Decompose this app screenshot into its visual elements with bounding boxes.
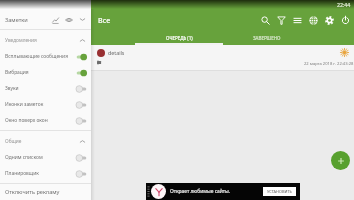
staticText: 22:44 [337, 1, 351, 8]
button[interactable]: Заметки [0, 10, 91, 29]
button[interactable]: Общие [0, 134, 91, 149]
button[interactable]: Отключить рекламу [0, 184, 91, 200]
button[interactable]: ОЧЕРЕДЬ (1) [135, 30, 223, 45]
button[interactable]: Search [257, 12, 273, 28]
button[interactable]: Preview [63, 14, 75, 26]
staticText: Общие [5, 138, 22, 145]
button[interactable]: Collapse [77, 14, 88, 25]
staticText: Открает любимые сайты. [170, 188, 231, 195]
button[interactable]: Statistics [49, 14, 61, 26]
button[interactable]: Всплывающие сообщения [0, 49, 91, 64]
staticText: Одним списком [5, 154, 43, 161]
button[interactable]: Menu [289, 12, 305, 28]
staticText: Всплывающие сообщения [5, 53, 68, 60]
staticText: УСТАНОВИТЬ [267, 189, 292, 194]
button[interactable]: Add note [331, 151, 350, 170]
button[interactable]: Exit [337, 12, 353, 28]
button[interactable]: Вибрация [0, 65, 91, 80]
staticText: Все [98, 15, 111, 25]
button[interactable]: Одним списком [0, 150, 91, 165]
staticText: Звуки [5, 85, 19, 92]
staticText: Окно поверх окон [5, 117, 48, 124]
staticText: Отключить рекламу [5, 188, 60, 196]
staticText: Планировщик [5, 170, 39, 177]
button[interactable]: Filter [273, 12, 289, 28]
staticText: Иконки заметок [5, 101, 44, 108]
button[interactable]: Открает любимые сайты. [146, 183, 300, 200]
button[interactable]: Звуки [0, 81, 91, 96]
button[interactable]: Окно поверх окон [0, 113, 91, 128]
staticText: Вибрация [5, 69, 29, 76]
button[interactable]: Планировщик [0, 166, 91, 181]
staticText: ОЧЕРЕДЬ (1) [166, 35, 193, 41]
staticText: details [108, 49, 125, 56]
staticText: 22 марта 2018 г. 22:43:28 [304, 61, 354, 67]
button[interactable]: Уведомления [0, 33, 91, 48]
button[interactable]: УСТАНОВИТЬ [263, 187, 296, 196]
staticText: Уведомления [5, 37, 37, 44]
staticText: Заметки [5, 16, 28, 24]
button[interactable]: details [91, 45, 354, 71]
button[interactable]: Language [305, 12, 321, 28]
button[interactable]: Иконки заметок [0, 97, 91, 112]
button[interactable]: ЗАВЕРШЕНО [223, 30, 311, 45]
button[interactable]: Settings [321, 12, 337, 28]
staticText: ЗАВЕРШЕНО [253, 35, 281, 41]
